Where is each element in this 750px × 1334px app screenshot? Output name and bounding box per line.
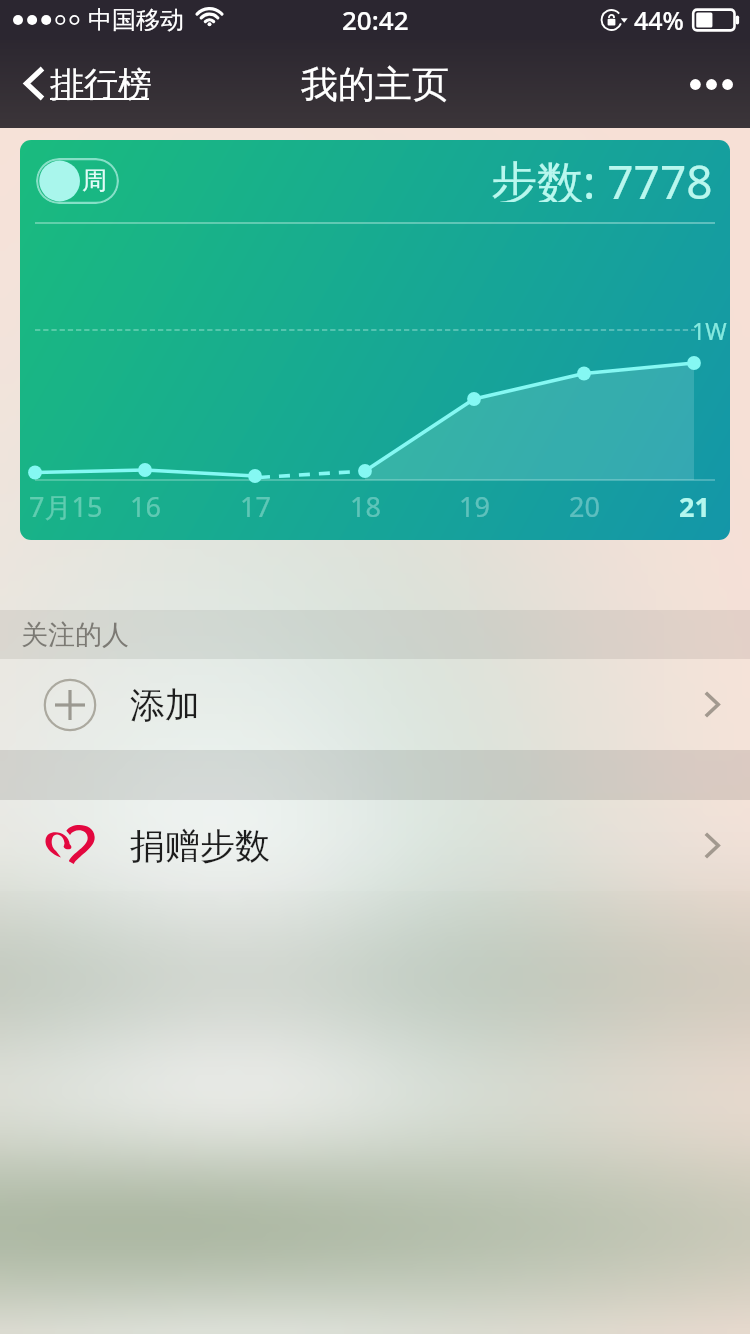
button[interactable]: 排行榜 xyxy=(0,52,168,116)
staticText: 18 xyxy=(350,488,381,525)
button[interactable]: More options xyxy=(673,55,750,114)
button[interactable]: 捐赠步数 xyxy=(0,800,750,891)
staticText: 7月15 xyxy=(29,488,103,525)
staticText: 关注的人 xyxy=(21,618,129,652)
staticText: 周 xyxy=(82,165,107,196)
staticText: 1W xyxy=(692,315,727,345)
staticText: 44% xyxy=(634,3,684,37)
staticText: 16 xyxy=(130,488,161,525)
staticText: 捐赠步数 xyxy=(130,824,270,868)
staticText: 步数: 7778 xyxy=(491,150,713,202)
staticText: 21 xyxy=(679,488,710,525)
staticText: 20 xyxy=(569,488,600,525)
button[interactable]: 添加 xyxy=(0,659,750,750)
staticText: 17 xyxy=(240,488,271,525)
staticText: 19 xyxy=(459,488,490,525)
staticText: 我的主页 xyxy=(301,61,449,108)
staticText: 中国移动 xyxy=(88,5,184,35)
staticText: 20:42 xyxy=(342,2,409,37)
staticText: 添加 xyxy=(130,683,200,727)
staticText: 排行榜 xyxy=(50,63,152,106)
button[interactable]: 周 xyxy=(36,158,119,204)
